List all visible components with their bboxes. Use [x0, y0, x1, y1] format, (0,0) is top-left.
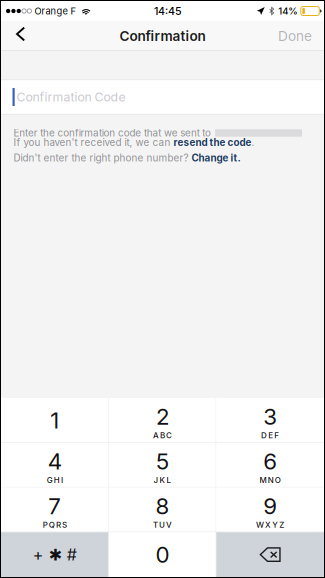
button[interactable]: 6 [216, 443, 324, 488]
staticText: Confirmation Code [16, 90, 125, 104]
staticText: . [251, 136, 254, 148]
button[interactable]: 4 [1, 443, 109, 488]
button[interactable]: Delete [216, 532, 324, 577]
button[interactable]: Done [266, 22, 324, 50]
staticText: Change it. [191, 152, 240, 164]
button[interactable]: 0 [109, 532, 216, 577]
staticText: 0 [155, 541, 169, 568]
button[interactable]: 8 [109, 487, 216, 532]
button[interactable]: 3 [216, 398, 324, 443]
button[interactable]: + ✱ # [1, 532, 109, 577]
staticText: 14% [278, 5, 298, 17]
staticText: GHI [47, 475, 63, 485]
staticText: 14:45 [154, 4, 182, 17]
staticText: Enter the confirmation code that we sent… [13, 127, 211, 139]
button[interactable]: 9 [216, 487, 324, 532]
staticText: 3 [263, 403, 277, 430]
staticText: 4 [48, 448, 62, 475]
button[interactable]: 1 [1, 398, 109, 443]
button[interactable]: 2 [109, 398, 216, 443]
staticText: 7 [48, 492, 61, 520]
staticText: DEF [261, 431, 279, 440]
staticText: 6 [263, 448, 277, 475]
button[interactable]: 7 [1, 487, 109, 532]
staticText: MNO [260, 475, 281, 485]
button[interactable]: Change it. [191, 152, 240, 164]
button[interactable]: 5 [109, 443, 216, 488]
staticText: 9 [263, 492, 277, 520]
staticText: 8 [155, 492, 169, 520]
staticText: Done [278, 28, 312, 44]
staticText: + ✱ # [33, 545, 77, 564]
staticText: Confirmation [119, 28, 205, 44]
staticText: JKL [153, 475, 172, 485]
staticText: resend the code [173, 136, 251, 148]
staticText: 1 [50, 407, 59, 434]
staticText: Didn't enter the right phone number? [13, 152, 191, 164]
button[interactable]: Back [1, 24, 38, 48]
staticText: Orange F [34, 5, 76, 17]
staticText: PQRS [43, 520, 67, 530]
button[interactable]: resend the code [173, 136, 251, 148]
staticText: WXYZ [256, 520, 284, 530]
staticText: 5 [156, 448, 169, 475]
staticText: 2 [156, 403, 169, 430]
staticText: TUV [153, 520, 172, 530]
staticText: ABC [153, 431, 172, 440]
staticText: If you haven't received it, we can [13, 136, 173, 148]
